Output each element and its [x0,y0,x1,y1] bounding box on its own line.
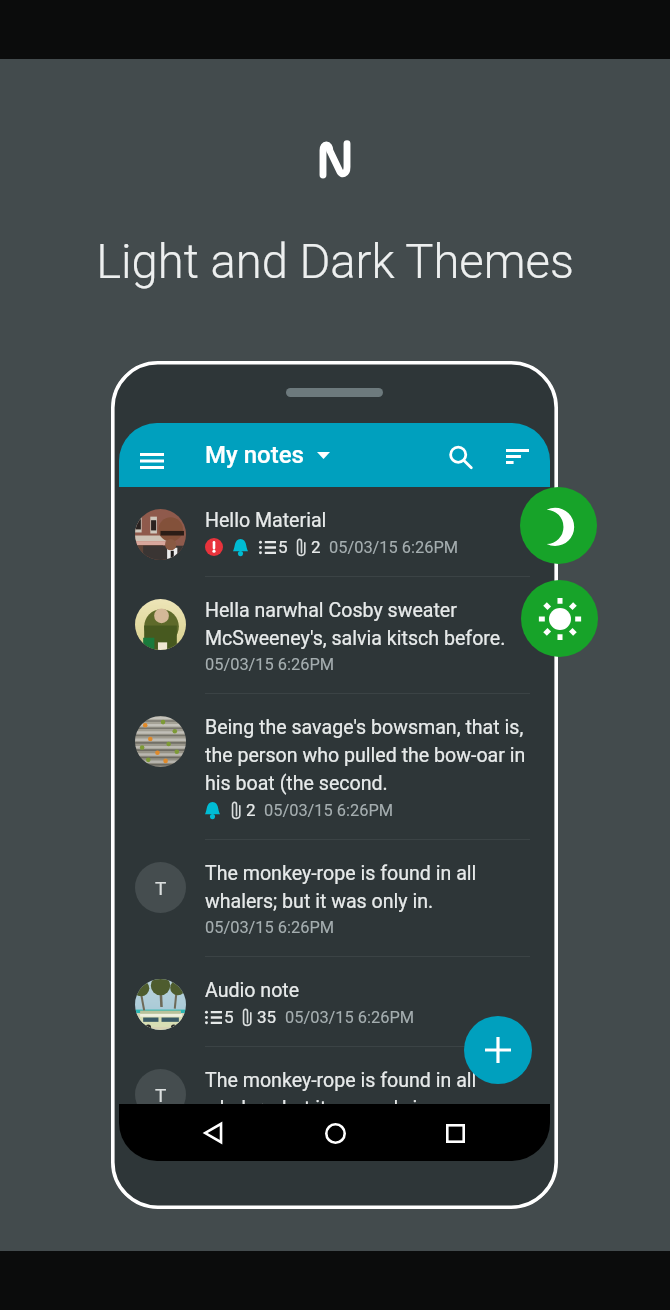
button[interactable]: Search [437,434,483,480]
button[interactable]: Menu [129,438,174,483]
staticText: The monkey-rope is found in all whalers;… [205,858,477,914]
staticText: 05/03/15 6:26PM [205,918,335,937]
staticText: 5 [278,537,288,557]
button[interactable]: My notes [199,435,338,475]
staticText: Light and Dark Themes [96,234,574,289]
staticText: 2 [246,800,256,820]
button[interactable]: Recents [434,1112,476,1154]
staticText: T [155,877,167,899]
staticText: 05/03/15 6:26PM [205,1125,335,1142]
staticText: 05/03/15 6:26PM [264,801,394,820]
staticText: 05/03/15 6:26PM [285,1008,415,1027]
staticText: 05/03/15 6:26PM [329,538,459,557]
staticText: 35 [257,1007,277,1027]
button[interactable]: Sort [495,434,540,479]
staticText: Audio note [205,975,300,1003]
button[interactable]: Back [193,1112,235,1154]
staticText: Being the savage's bowsman, that is, the… [205,712,526,796]
button[interactable]: Dark theme [520,487,597,564]
staticText: The monkey-rope is found in all whalers;… [205,1065,477,1121]
staticText: 5 [224,1007,234,1027]
staticText: 05/03/15 6:26PM [205,655,335,674]
staticText: Hella narwhal Cosby sweater McSweeney's,… [205,595,506,651]
staticText: 2 [311,537,321,557]
staticText: Hello Material [205,505,327,533]
button[interactable]: Add note [464,1016,532,1084]
button[interactable]: Home [314,1112,356,1154]
button[interactable]: Light theme [521,580,598,657]
staticText: My notes [205,441,304,469]
staticText: T [155,1084,167,1106]
